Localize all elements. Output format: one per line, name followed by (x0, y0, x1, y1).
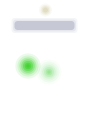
button[interactable]: Idle (36, 59, 62, 85)
button[interactable]: Profile (39, 3, 52, 16)
button[interactable]: Search (11, 18, 77, 33)
button[interactable]: Online (15, 53, 41, 79)
